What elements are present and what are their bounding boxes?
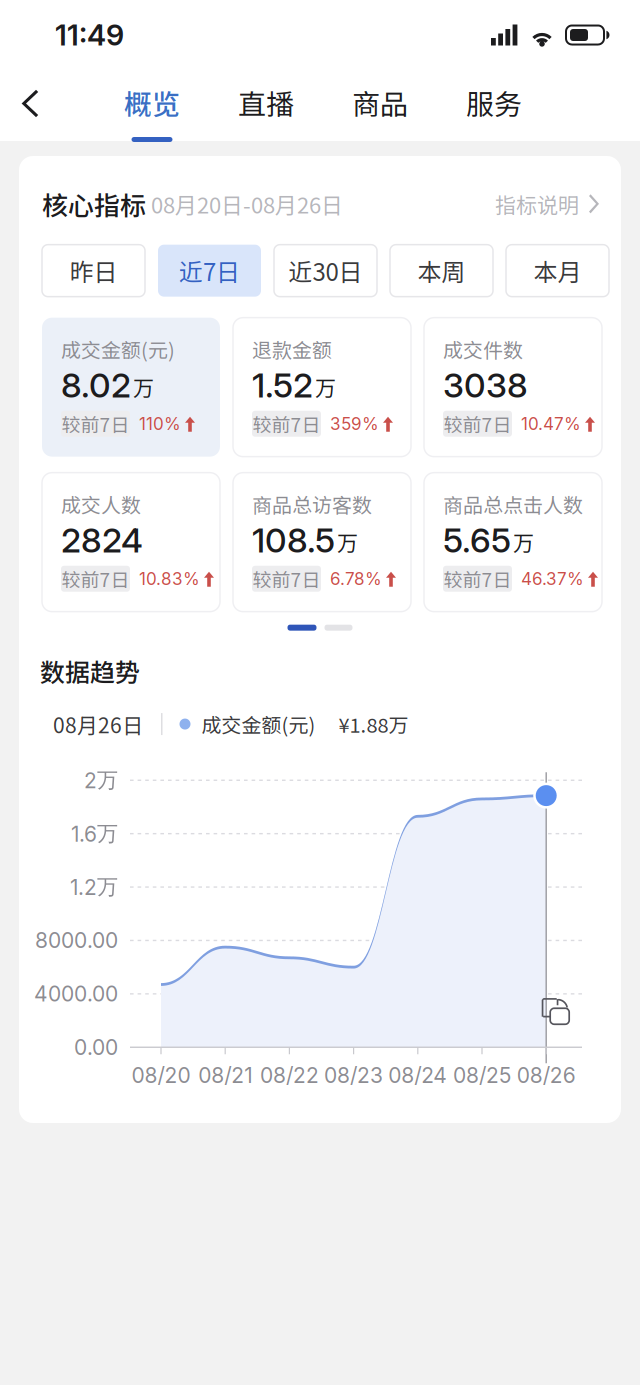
button[interactable]: 昨日 [42, 245, 145, 297]
staticText: 0.00 [74, 1035, 118, 1060]
staticText: 昨日 [69, 253, 117, 288]
button[interactable]: 成交人数 [42, 473, 220, 612]
staticText: 359% [330, 413, 379, 434]
staticText: 较前7日 [61, 410, 129, 437]
staticText: 3038 [443, 365, 528, 406]
button[interactable]: 直播 [209, 70, 323, 141]
staticText: 退款金额 [252, 335, 332, 364]
button[interactable]: 成交金额(元) [42, 318, 220, 457]
staticText: 成交金额(元) [61, 335, 175, 364]
staticText: 6.78% [330, 568, 382, 589]
staticText: 08/24 [388, 1063, 447, 1088]
staticText: 4000.00 [34, 981, 118, 1007]
button[interactable]: 成交件数 [424, 318, 602, 457]
staticText: 5.65 [443, 520, 511, 561]
button[interactable]: 商品 [323, 70, 437, 141]
staticText: 08月20日-08月26日 [146, 188, 343, 220]
staticText: 服务 [466, 82, 522, 123]
staticText: 1.52 [252, 365, 313, 406]
button[interactable]: 概览 [0, 70, 209, 141]
staticText: 近7日 [179, 253, 240, 288]
staticText: 08月26日 [53, 709, 143, 739]
staticText: 08/26 [517, 1063, 576, 1088]
staticText: 较前7日 [443, 565, 511, 592]
staticText: 近30日 [288, 253, 362, 288]
button[interactable]: 本月 [506, 245, 609, 297]
staticText: 46.37% [521, 568, 584, 589]
staticText: 万 [513, 526, 534, 557]
button[interactable]: 本周 [390, 245, 493, 297]
staticText: 万 [133, 371, 154, 402]
button[interactable]: Back [0, 70, 62, 141]
staticText: 1.2万 [70, 874, 118, 900]
button[interactable]: 近30日 [274, 245, 377, 297]
staticText: 08/20 [131, 1063, 190, 1088]
button[interactable]: 服务 [437, 70, 551, 141]
staticText: 较前7日 [443, 410, 511, 437]
staticText: ¥1.88万 [338, 710, 408, 739]
staticText: 10.83% [139, 568, 200, 589]
staticText: 08/22 [260, 1063, 319, 1088]
button[interactable]: 商品总访客数 [233, 473, 411, 612]
staticText: 08/23 [324, 1063, 383, 1088]
staticText: 110% [139, 413, 181, 434]
button[interactable]: 商品总点击人数 [424, 473, 602, 612]
staticText: 数据趋势 [40, 653, 140, 689]
button[interactable]: 近7日 [158, 245, 261, 297]
staticText: 万 [337, 526, 358, 557]
button[interactable]: 指标说明 [495, 189, 599, 219]
staticText: 成交件数 [443, 335, 523, 364]
staticText: 2万 [84, 767, 118, 793]
staticText: 8000.00 [35, 928, 118, 953]
staticText: 核心指标 [42, 185, 146, 223]
staticText: 108.5 [252, 520, 335, 561]
staticText: 较前7日 [252, 565, 320, 592]
staticText: 商品总访客数 [252, 490, 372, 519]
staticText: 万 [315, 371, 336, 402]
staticText: 本周 [417, 253, 465, 288]
staticText: 直播 [238, 82, 294, 123]
staticText: 10.47% [521, 413, 581, 434]
button[interactable]: 退款金额 [233, 318, 411, 457]
staticText: 08/25 [453, 1063, 511, 1088]
staticText: 8.02 [61, 365, 131, 406]
staticText: 成交人数 [61, 490, 141, 519]
staticText: 较前7日 [61, 565, 129, 592]
staticText: 商品 [352, 82, 408, 123]
staticText: 较前7日 [252, 410, 320, 437]
staticText: 成交金额(元) [201, 710, 315, 739]
staticText: 指标说明 [495, 189, 579, 219]
staticText: 2824 [61, 520, 143, 561]
staticText: 11:49 [55, 17, 124, 53]
staticText: 1.6万 [71, 820, 118, 847]
staticText: 概览 [124, 82, 180, 123]
staticText: 本月 [533, 253, 581, 288]
staticText: 08/21 [198, 1063, 252, 1088]
staticText: 商品总点击人数 [443, 490, 583, 519]
